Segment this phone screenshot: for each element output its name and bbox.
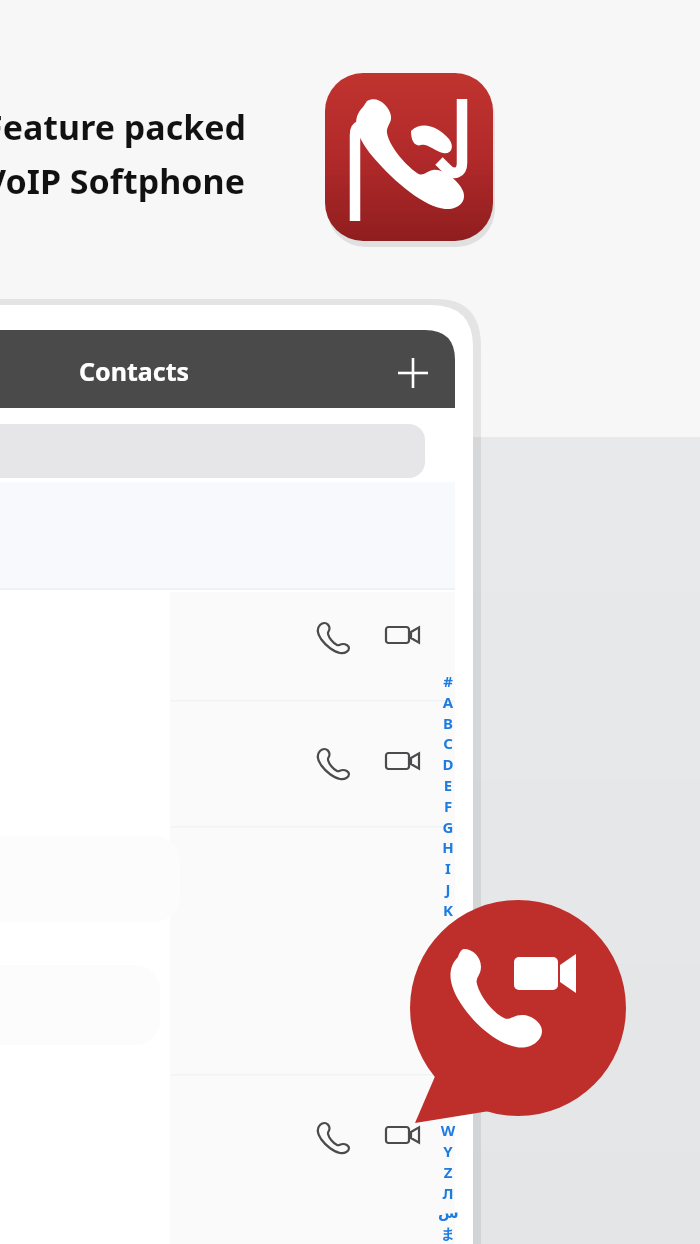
staticText: W xyxy=(438,1120,458,1141)
staticText: J xyxy=(438,879,458,900)
button[interactable]: Л xyxy=(438,1183,458,1204)
staticText: ま xyxy=(438,1225,458,1244)
staticText: G xyxy=(438,817,458,838)
button[interactable]: Video call xyxy=(380,738,430,788)
staticText: Z xyxy=(438,1162,458,1183)
button[interactable]: K xyxy=(438,900,458,921)
button[interactable]: Call xyxy=(310,612,360,662)
staticText: س xyxy=(438,1204,458,1225)
button[interactable]: A xyxy=(438,692,458,713)
staticText: H xyxy=(438,837,458,858)
staticText: Contacts xyxy=(79,354,190,388)
staticText: E xyxy=(438,775,458,796)
button[interactable]: F xyxy=(438,796,458,817)
staticText: I xyxy=(438,858,458,879)
button[interactable]: Call xyxy=(310,738,360,788)
button[interactable]: Video call xyxy=(380,612,430,662)
staticText: A xyxy=(438,692,458,713)
button[interactable]: س xyxy=(438,1204,458,1225)
staticText: D xyxy=(438,754,458,775)
button[interactable]: Video call xyxy=(380,1112,430,1162)
button[interactable]: E xyxy=(438,775,458,796)
staticText: K xyxy=(438,900,458,921)
staticText: C xyxy=(438,733,458,754)
staticText: Л xyxy=(438,1183,458,1204)
staticText: Y xyxy=(438,1141,458,1162)
button[interactable]: B xyxy=(438,713,458,734)
button[interactable]: # xyxy=(438,671,458,692)
staticText: # xyxy=(438,671,458,692)
button[interactable]: App icon xyxy=(325,73,497,245)
button[interactable]: J xyxy=(438,879,458,900)
staticText: F xyxy=(438,796,458,817)
button[interactable]: H xyxy=(438,837,458,858)
button[interactable]: G xyxy=(438,817,458,838)
button[interactable]: New video call xyxy=(400,895,640,1135)
staticText: B xyxy=(438,713,458,734)
staticText: Feature packed xyxy=(0,104,247,150)
button[interactable]: I xyxy=(438,858,458,879)
button[interactable]: C xyxy=(438,733,458,754)
button[interactable]: W xyxy=(438,1120,458,1141)
button[interactable]: Call xyxy=(310,1112,360,1162)
button[interactable]: ま xyxy=(438,1225,458,1244)
button[interactable]: D xyxy=(438,754,458,775)
staticText: VoIP Softphone xyxy=(0,158,245,204)
button[interactable]: Y xyxy=(438,1141,458,1162)
button[interactable]: Add contact xyxy=(389,349,437,397)
button[interactable]: Z xyxy=(438,1162,458,1183)
